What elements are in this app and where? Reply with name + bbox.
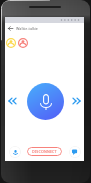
button[interactable]: DISCONNECT: [27, 147, 62, 156]
button[interactable]: Mute microphone: [9, 146, 21, 158]
button[interactable]: Previous channel: [7, 94, 20, 107]
staticText: DISCONNECT: [32, 149, 57, 154]
button[interactable]: Open chat: [69, 146, 81, 158]
staticText: Walkie-talkie: [16, 26, 38, 31]
button[interactable]: Push to talk: [27, 83, 64, 120]
button[interactable]: Participant: [6, 38, 16, 48]
button[interactable]: Participant: [18, 38, 28, 48]
button[interactable]: Back: [5, 23, 15, 33]
button[interactable]: Next channel: [69, 94, 82, 107]
